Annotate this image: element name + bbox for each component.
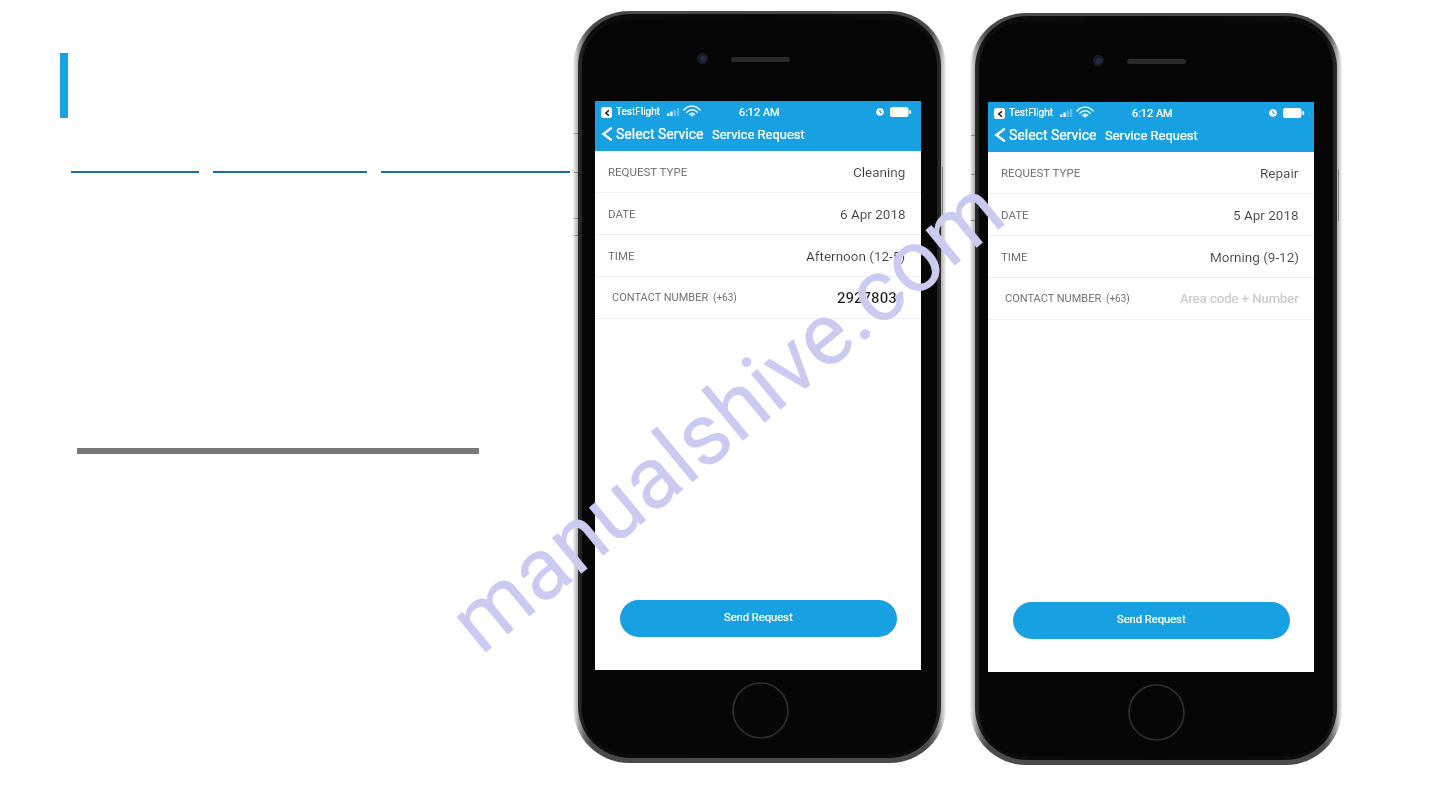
staticText: Send Request [724, 611, 793, 624]
button[interactable]: CONTACT NUMBER [595, 277, 921, 318]
staticText: 5 Apr 2018 [1233, 207, 1299, 223]
staticText: Select Service [1009, 127, 1097, 143]
staticText: 6:12 AM [1132, 107, 1173, 120]
button[interactable]: Select Service [988, 126, 1099, 144]
staticText: manualshive.com [430, 158, 1023, 672]
staticText: CONTACT NUMBER [1005, 292, 1102, 305]
button[interactable]: Send Request [620, 600, 897, 637]
staticText: TIME [1001, 250, 1028, 263]
staticText: Cleaning [853, 164, 906, 180]
button[interactable]: Select Service [595, 125, 706, 143]
staticText: 29278031 [837, 289, 906, 307]
staticText: TIME [608, 249, 635, 262]
staticText: 6:12 AM [739, 106, 780, 119]
staticText: Area code + Number [1180, 291, 1299, 306]
staticText: Select Service [616, 126, 704, 142]
staticText: REQUEST TYPE [1001, 166, 1081, 179]
button[interactable]: CONTACT NUMBER [988, 278, 1314, 319]
staticText: Service Request [712, 127, 805, 142]
staticText: Morning (9-12) [1210, 249, 1299, 265]
button[interactable]: REQUEST TYPE [988, 152, 1314, 193]
button[interactable]: DATE [595, 193, 921, 234]
button[interactable]: Back to TestFlight [994, 108, 1005, 119]
staticText: TestFlight [616, 106, 661, 118]
staticText: 6 Apr 2018 [840, 206, 906, 222]
button[interactable]: TIME [595, 235, 921, 276]
staticText: TestFlight [1009, 107, 1054, 119]
button[interactable]: DATE [988, 194, 1314, 235]
button[interactable]: Send Request [1013, 602, 1290, 639]
button[interactable]: REQUEST TYPE [595, 151, 921, 192]
staticText: (+63) [1106, 293, 1130, 305]
button[interactable]: Back to TestFlight [601, 107, 612, 118]
staticText: DATE [1001, 208, 1029, 221]
staticText: (+63) [713, 292, 737, 304]
staticText: Afternoon (12-5) [806, 248, 906, 264]
staticText: Send Request [1117, 613, 1186, 626]
staticText: CONTACT NUMBER [612, 291, 709, 304]
staticText: Repair [1260, 165, 1299, 181]
staticText: Service Request [1105, 128, 1198, 143]
staticText: REQUEST TYPE [608, 165, 688, 178]
button[interactable]: TIME [988, 236, 1314, 277]
staticText: DATE [608, 207, 636, 220]
